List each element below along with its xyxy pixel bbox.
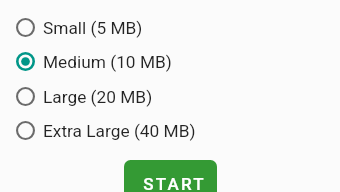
- button[interactable]: Extra Large (40 MB): [0, 113, 340, 148]
- button[interactable]: Medium (10 MB): [0, 44, 340, 79]
- button[interactable]: Large (20 MB): [0, 79, 340, 114]
- staticText: Medium (10 MB): [43, 52, 172, 72]
- staticText: Extra Large (40 MB): [43, 121, 196, 141]
- staticText: Large (20 MB): [43, 87, 153, 107]
- staticText: START: [143, 174, 206, 192]
- button[interactable]: Start: [124, 160, 217, 192]
- staticText: Small (5 MB): [43, 18, 143, 38]
- button[interactable]: Small (5 MB): [0, 10, 340, 45]
